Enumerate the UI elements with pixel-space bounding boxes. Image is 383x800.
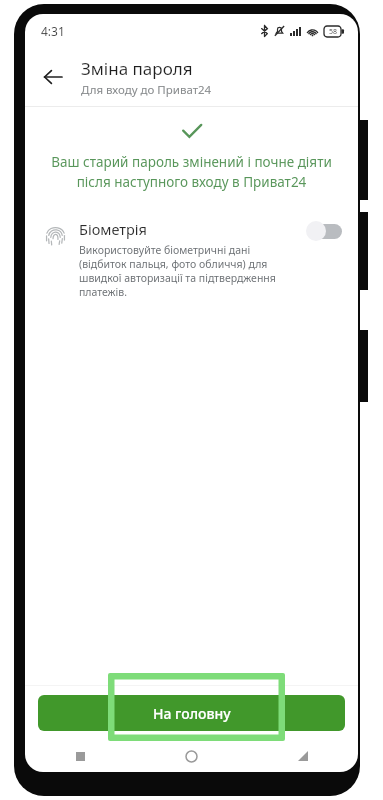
button[interactable]: Biometry toggle	[306, 221, 344, 241]
staticText: Ваш старий пароль змінений і почне діяти…	[43, 153, 340, 191]
staticText: 4:31	[41, 23, 65, 39]
button[interactable]: Home	[136, 740, 247, 772]
staticText: Для входу до Приват24	[81, 82, 212, 98]
staticText: Використовуйте біометричні дані (відбито…	[79, 243, 296, 299]
staticText: На головну	[153, 704, 231, 723]
staticText: 58	[329, 27, 338, 37]
button[interactable]: Back	[247, 740, 358, 772]
button[interactable]: На головну	[38, 695, 345, 731]
button[interactable]: Back	[31, 55, 75, 99]
staticText: Біометрія	[79, 219, 147, 239]
staticText: Зміна пароля	[81, 57, 193, 80]
button[interactable]: Біометрія	[25, 213, 358, 303]
button[interactable]: Recents	[25, 740, 136, 772]
